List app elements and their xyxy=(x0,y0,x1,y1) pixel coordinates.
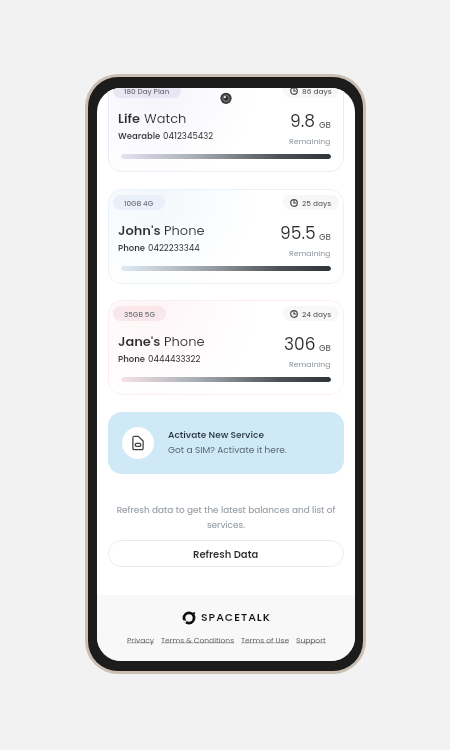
staticText: Life xyxy=(118,109,144,127)
staticText: 9.8 xyxy=(290,109,316,133)
staticText: SPACETALK xyxy=(201,610,271,625)
staticText: 180 Day Plan xyxy=(124,88,170,96)
staticText: Refresh data to get the latest balances … xyxy=(107,504,345,531)
staticText: 10GB 4G xyxy=(124,198,154,208)
staticText: 0412345432 xyxy=(163,130,214,142)
button[interactable]: 10GB 4G xyxy=(108,189,344,284)
button[interactable]: 180 Day Plan xyxy=(108,88,344,172)
staticText: Terms & Conditions xyxy=(161,635,235,645)
button[interactable]: Terms & Conditions xyxy=(161,635,235,645)
staticText: Got a SIM? Activate it here. xyxy=(168,444,287,457)
button[interactable]: Refresh Data xyxy=(108,540,344,567)
staticText: Phone xyxy=(118,242,148,254)
staticText: Activate New Service xyxy=(168,429,264,442)
staticText: 86 days xyxy=(302,88,332,96)
staticText: Privacy xyxy=(127,635,155,645)
staticText: Support xyxy=(296,635,326,645)
button[interactable]: Support xyxy=(296,635,326,645)
button[interactable]: 35GB 5G xyxy=(108,300,344,395)
staticText: 0444433322 xyxy=(148,353,201,365)
staticText: Refresh Data xyxy=(193,547,259,561)
staticText: Watch xyxy=(144,109,187,127)
staticText: Jane's xyxy=(118,332,164,350)
staticText: Phone xyxy=(164,332,205,350)
button[interactable]: Activate New Service xyxy=(108,412,344,474)
staticText: 35GB 5G xyxy=(124,309,155,319)
button[interactable]: Terms of Use xyxy=(241,635,290,645)
staticText: Remaining xyxy=(289,248,331,259)
staticText: 0422233344 xyxy=(148,242,200,254)
staticText: Wearable xyxy=(118,130,163,142)
staticText: 306 xyxy=(284,332,316,356)
staticText: Remaining xyxy=(289,359,331,370)
staticText: GB xyxy=(319,231,331,243)
staticText: 25 days xyxy=(302,198,332,208)
staticText: GB xyxy=(319,119,331,131)
staticText: Phone xyxy=(164,221,205,239)
staticText: Terms of Use xyxy=(241,635,290,645)
staticText: GB xyxy=(319,342,331,354)
staticText: Remaining xyxy=(289,136,331,147)
staticText: 95.5 xyxy=(280,221,316,245)
staticText: Phone xyxy=(118,353,148,365)
staticText: John's xyxy=(118,221,164,239)
button[interactable]: Privacy xyxy=(127,635,155,645)
staticText: 24 days xyxy=(302,309,332,319)
